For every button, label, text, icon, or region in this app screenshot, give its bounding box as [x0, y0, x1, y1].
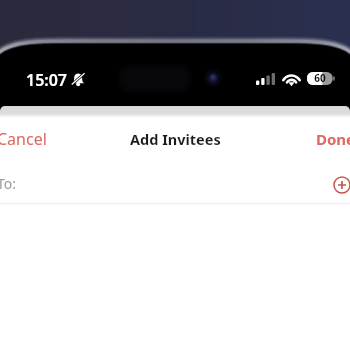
button[interactable]: Cancel — [0, 122, 57, 156]
button[interactable]: Add contact — [329, 172, 350, 198]
staticText: 15:07 — [26, 69, 68, 91]
staticText: 60 — [314, 71, 326, 85]
button[interactable]: Done — [306, 123, 350, 155]
staticText: Cancel — [0, 128, 47, 150]
staticText: To: — [0, 174, 17, 193]
staticText: Add Invitees — [130, 129, 221, 149]
staticText: Done — [316, 129, 350, 149]
button[interactable]: To: — [0, 168, 350, 198]
